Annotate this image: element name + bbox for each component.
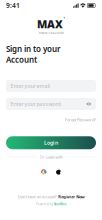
staticText: 9:41 bbox=[6, 1, 20, 10]
staticText: Sign in to your Account bbox=[6, 44, 60, 65]
staticText: Forgot Password? bbox=[65, 117, 96, 122]
staticText: SandBox bbox=[54, 202, 66, 206]
staticText: Enter your password bbox=[10, 100, 60, 107]
button[interactable]: Forgot Password? bbox=[65, 117, 96, 122]
staticText: FINANCE SOLUTIONS bbox=[38, 31, 63, 35]
button[interactable]: Sign in with Apple bbox=[56, 169, 61, 175]
staticText: Register Now bbox=[58, 194, 84, 199]
staticText: Powered by bbox=[36, 202, 53, 206]
button[interactable]: Enter your password bbox=[6, 98, 96, 110]
button[interactable]: Sign in with Google bbox=[41, 169, 47, 175]
button[interactable]: Enter your email bbox=[6, 80, 96, 92]
staticText: Login bbox=[44, 139, 58, 146]
staticText: Don't have an account? bbox=[18, 194, 57, 199]
staticText: Or Login with bbox=[39, 154, 62, 160]
button[interactable]: Don't have an account? bbox=[18, 194, 84, 199]
staticText: MAX bbox=[37, 17, 63, 31]
staticText: Enter your email bbox=[10, 82, 49, 89]
button[interactable]: Login bbox=[6, 136, 96, 149]
